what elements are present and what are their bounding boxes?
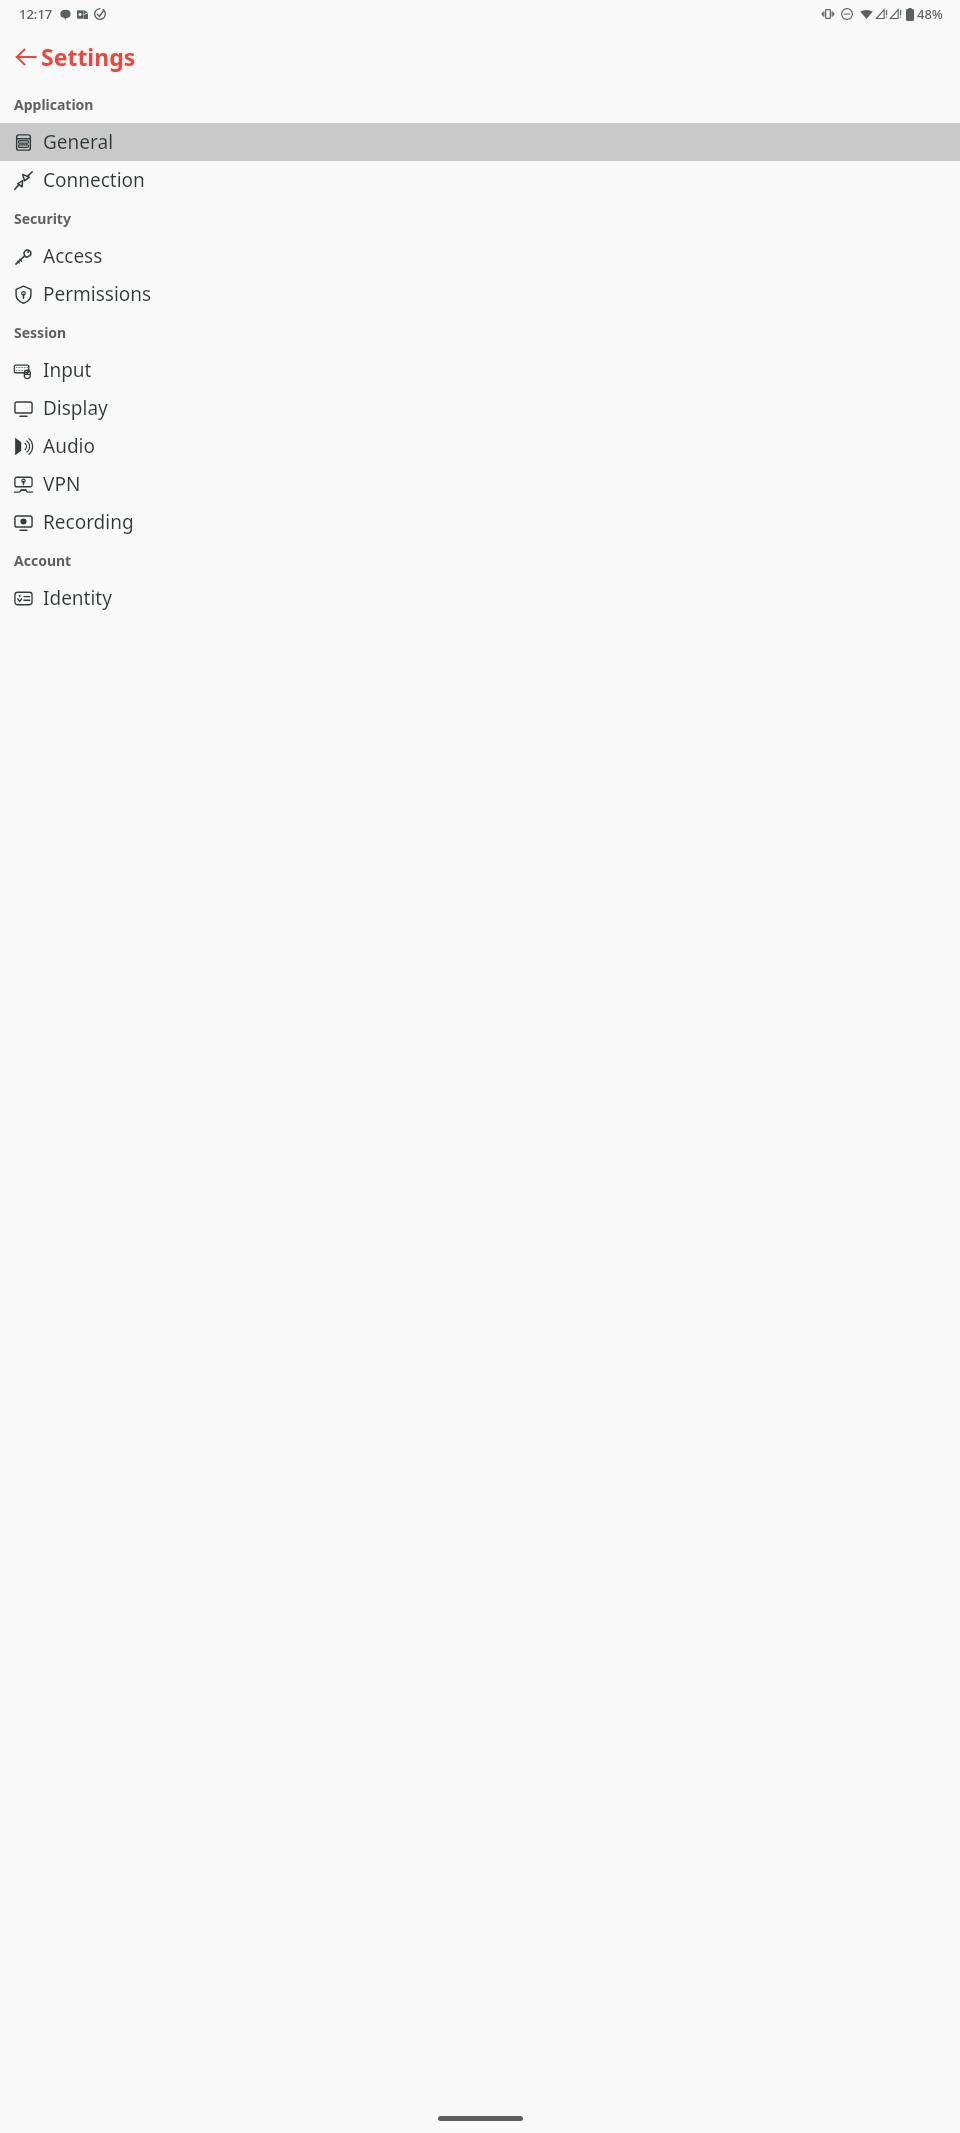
button[interactable]: Input: [0, 351, 960, 389]
button[interactable]: Permissions: [0, 275, 960, 313]
staticText: Account: [14, 551, 72, 570]
button[interactable]: Identity: [0, 579, 960, 617]
button[interactable]: VPN: [0, 465, 960, 503]
staticText: Connection: [43, 167, 145, 193]
button[interactable]: Back: [4, 35, 48, 79]
staticText: 12:17: [19, 5, 53, 23]
staticText: General: [43, 129, 114, 155]
staticText: Recording: [43, 509, 134, 535]
button[interactable]: Audio: [0, 427, 960, 465]
button[interactable]: Connection: [0, 161, 960, 199]
staticText: Audio: [43, 433, 95, 459]
button[interactable]: Recording: [0, 503, 960, 541]
button[interactable]: Display: [0, 389, 960, 427]
staticText: Identity: [43, 585, 112, 611]
staticText: Input: [43, 357, 92, 383]
button[interactable]: General: [0, 123, 960, 161]
button[interactable]: Access: [0, 237, 960, 275]
staticText: Access: [43, 243, 103, 269]
staticText: VPN: [43, 471, 81, 497]
staticText: Settings: [41, 41, 136, 72]
staticText: Security: [14, 209, 71, 228]
staticText: Permissions: [43, 281, 152, 307]
staticText: 48%: [917, 5, 943, 23]
staticText: Display: [43, 395, 108, 421]
staticText: Session: [14, 323, 67, 342]
staticText: Application: [14, 95, 94, 114]
